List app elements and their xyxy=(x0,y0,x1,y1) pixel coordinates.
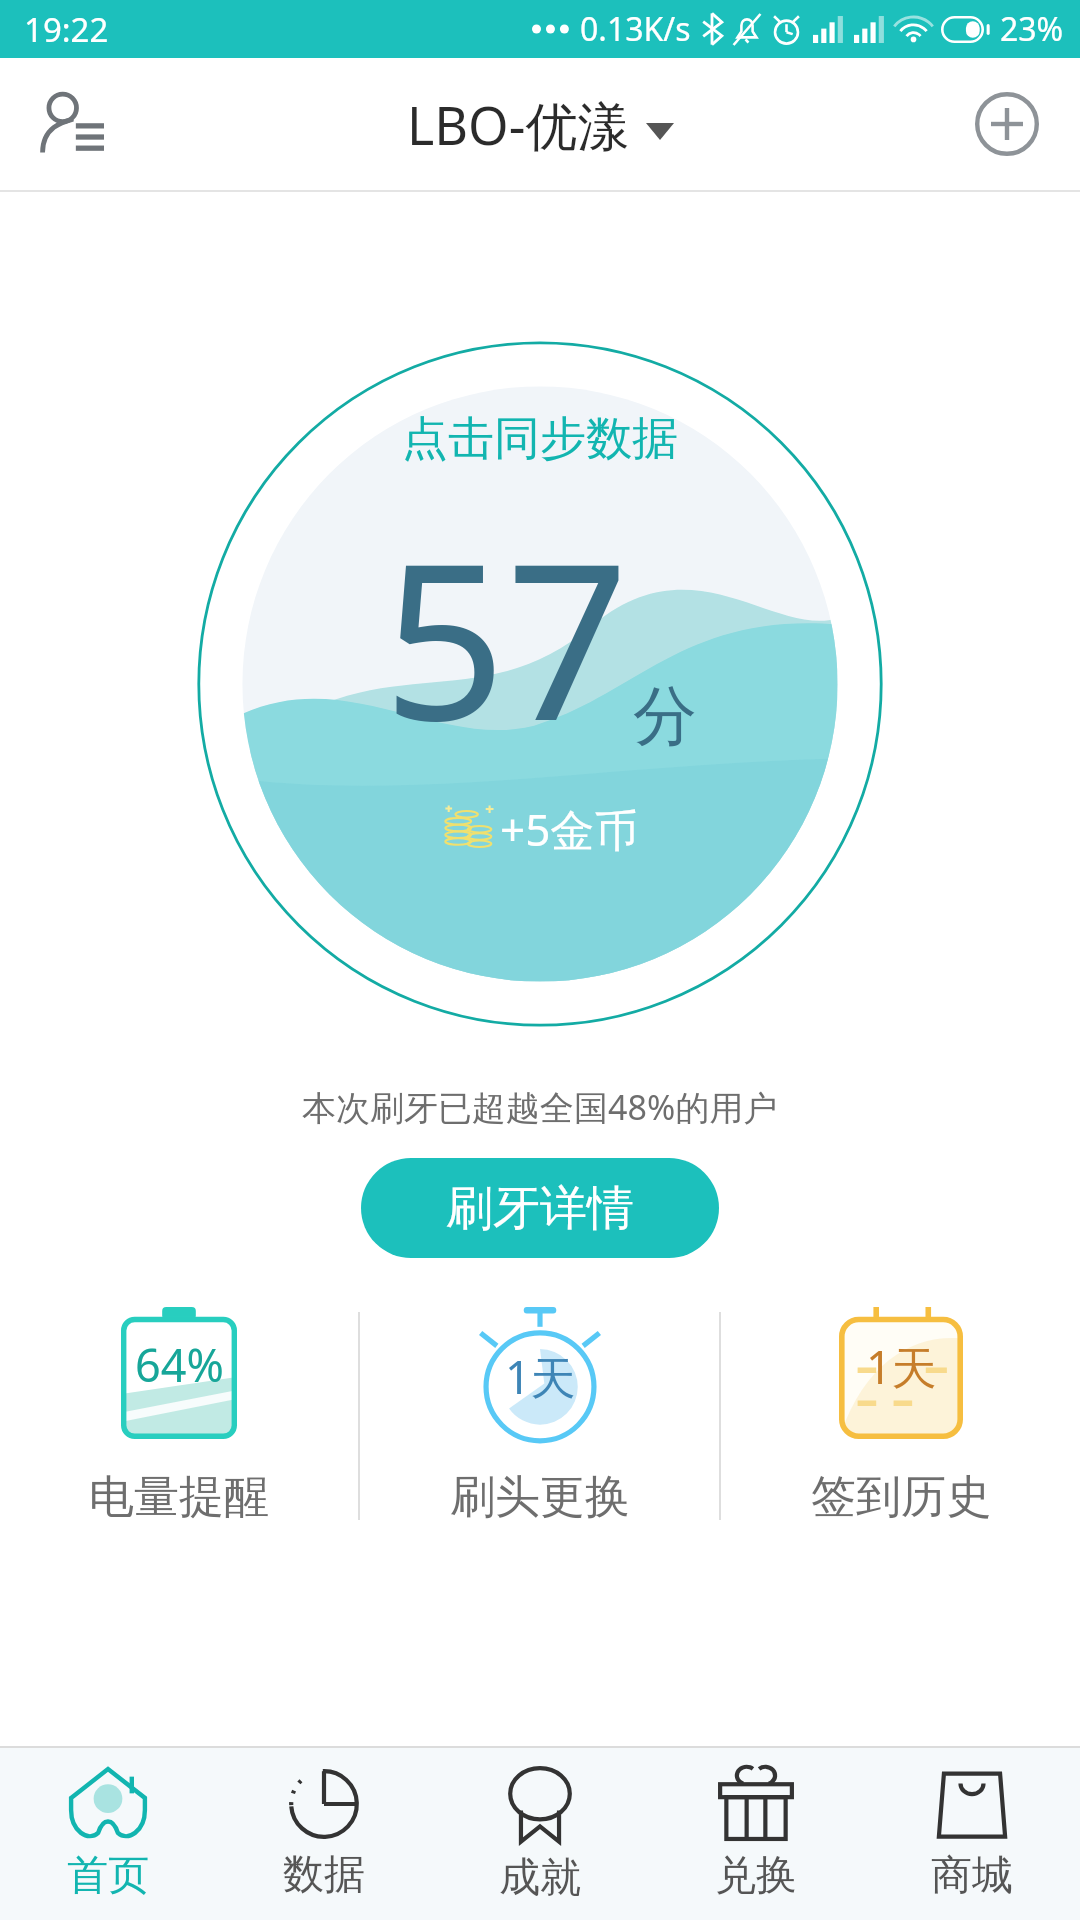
staticText: 兑换 xyxy=(715,1850,797,1902)
button[interactable]: 1天 xyxy=(360,1280,719,1552)
staticText: 1天 xyxy=(505,1346,576,1407)
staticText: 点击同步数据 xyxy=(402,410,678,468)
staticText: 23% xyxy=(1000,7,1064,51)
staticText: 数据 xyxy=(283,1849,365,1901)
button[interactable]: 点击同步数据 xyxy=(196,340,884,1028)
button[interactable]: 商城 xyxy=(864,1748,1080,1920)
staticText: 分 xyxy=(633,676,697,757)
button[interactable]: Add device xyxy=(966,83,1048,165)
button[interactable]: Profile xyxy=(28,80,116,168)
button[interactable]: 首页 xyxy=(0,1748,216,1920)
staticText: 1天 xyxy=(866,1336,937,1397)
button[interactable]: 1天 xyxy=(721,1280,1080,1552)
staticText: 0.13K/s xyxy=(580,7,691,51)
staticText: 本次刷牙已超越全国48%的用户 xyxy=(302,1084,778,1130)
button[interactable]: 兑换 xyxy=(648,1748,864,1920)
staticText: LBO-优漾 xyxy=(407,89,630,160)
staticText: +5金币 xyxy=(500,799,639,859)
staticText: 19:22 xyxy=(24,7,109,52)
button[interactable]: 刷牙详情 xyxy=(361,1158,719,1258)
staticText: 成就 xyxy=(499,1852,581,1904)
staticText: 64% xyxy=(135,1334,224,1395)
button[interactable]: 数据 xyxy=(216,1748,432,1920)
staticText: 刷头更换 xyxy=(450,1469,630,1526)
staticText: 签到历史 xyxy=(811,1469,991,1526)
button[interactable]: LBO-优漾 xyxy=(407,89,674,160)
staticText: 首页 xyxy=(67,1850,149,1902)
staticText: 57 xyxy=(383,490,629,783)
staticText: 电量提醒 xyxy=(89,1469,269,1526)
staticText: 商城 xyxy=(931,1850,1013,1902)
button[interactable]: 成就 xyxy=(432,1748,648,1920)
button[interactable]: 64% xyxy=(0,1280,358,1552)
staticText: 刷牙详情 xyxy=(446,1179,634,1238)
